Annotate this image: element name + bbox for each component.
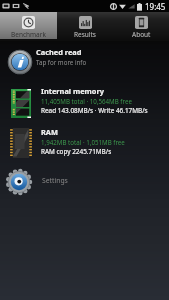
button[interactable]: Results [57,12,113,41]
staticText: Tap for more info [36,58,87,66]
staticText: Benchmark [11,30,46,39]
staticText: 11,405MB total · 10,564MB free [41,97,132,105]
staticText: 1,942MB total · 1,051MB free [41,138,125,146]
staticText: Results [74,30,96,39]
button[interactable]: RAM [0,124,169,163]
button[interactable]: Benchmark [0,12,57,41]
button[interactable]: Cached read [0,41,169,83]
staticText: Settings [42,176,68,185]
button[interactable]: About [113,12,169,41]
staticText: RAM [41,127,58,137]
button[interactable]: Internal memory [0,83,169,124]
staticText: Read 143.08MB/s · Write 46.17MB/s [41,106,148,115]
staticText: About [132,30,151,39]
staticText: Cached read [36,47,82,57]
button[interactable]: Settings [0,163,169,194]
staticText: 19:45 [145,1,166,12]
staticText: RAM copy 2245.71MB/s [41,147,112,156]
staticText: Internal memory [41,86,104,96]
